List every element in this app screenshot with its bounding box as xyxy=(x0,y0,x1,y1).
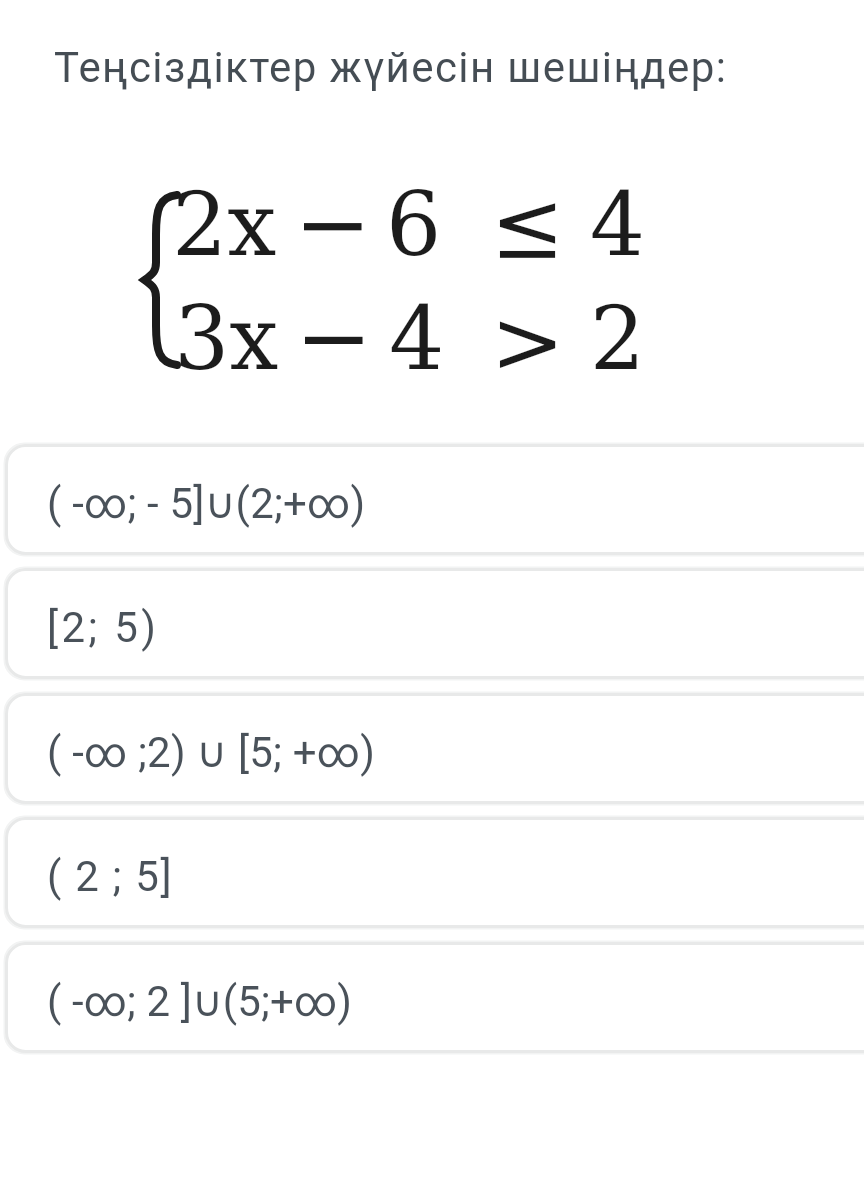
button[interactable]: ( 2 ; 5] xyxy=(5,817,864,928)
staticText: ( -∞; - 5]∪(2;+∞) xyxy=(47,479,366,528)
button[interactable]: ( -∞; - 5]∪(2;+∞) xyxy=(5,444,864,555)
staticText: Теңсіздіктер жүйесін шешіңдер: xyxy=(54,43,728,92)
staticText: > 2 xyxy=(493,300,646,387)
staticText: 2x xyxy=(172,186,277,273)
staticText: ≤ 4 xyxy=(493,186,645,273)
staticText: ( -∞; 2 ]∪(5;+∞) xyxy=(47,977,352,1026)
button[interactable]: [2; 5) xyxy=(5,568,864,679)
button[interactable]: ( -∞; 2 ]∪(5;+∞) xyxy=(5,942,864,1053)
staticText: 4 xyxy=(389,300,445,387)
staticText: ( 2 ; 5] xyxy=(47,852,174,901)
staticText: ( -∞ ;2) ∪ [5; +∞) xyxy=(47,728,375,777)
staticText: 6 xyxy=(386,186,442,273)
staticText: [2; 5) xyxy=(47,603,160,652)
button[interactable]: ( -∞ ;2) ∪ [5; +∞) xyxy=(5,693,864,804)
staticText: 3x xyxy=(174,300,279,387)
